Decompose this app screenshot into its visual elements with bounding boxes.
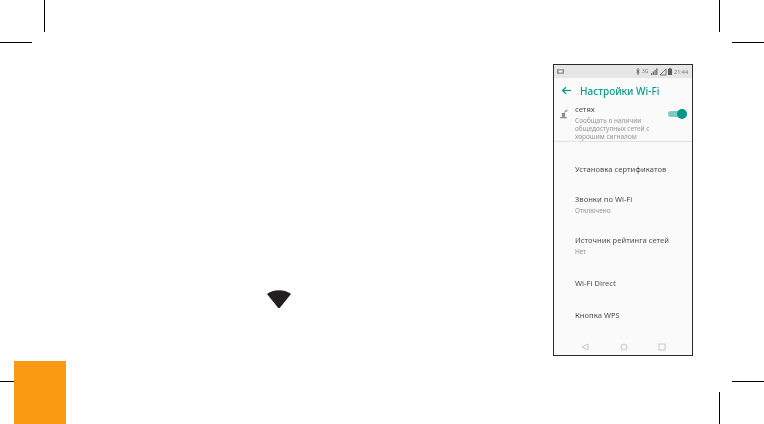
button[interactable]: Notify about open networks toggle: [667, 109, 687, 119]
staticText: 3G: [642, 68, 649, 75]
button[interactable]: Back: [577, 339, 592, 354]
staticText: Отключено: [575, 206, 611, 215]
staticText: Звонки по Wi-Fi: [575, 194, 633, 204]
button[interactable]: Wi-Fi Direct: [554, 256, 692, 288]
staticText: сетях: [575, 104, 595, 114]
staticText: 21:44: [674, 68, 689, 75]
button[interactable]: Back: [559, 83, 574, 98]
button[interactable]: Звонки по Wi-Fi: [554, 174, 692, 215]
staticText: Нет: [575, 247, 587, 256]
button[interactable]: Источник рейтинга сетей: [554, 215, 692, 256]
button[interactable]: Home: [616, 339, 631, 354]
staticText: Источник рейтинга сетей: [575, 235, 670, 245]
staticText: Настройки Wi-Fi: [580, 84, 660, 98]
staticText: Wi-Fi Direct: [575, 278, 616, 288]
button[interactable]: Кнопка WPS: [554, 288, 692, 320]
button[interactable]: сетях: [554, 103, 692, 141]
staticText: Кнопка WPS: [575, 310, 620, 320]
staticText: Установка сертификатов: [575, 164, 667, 174]
button[interactable]: Recents: [654, 339, 669, 354]
staticText: Сообщать о наличии общедоступных сетей с…: [575, 116, 650, 141]
button[interactable]: Установка сертификатов: [554, 142, 692, 174]
